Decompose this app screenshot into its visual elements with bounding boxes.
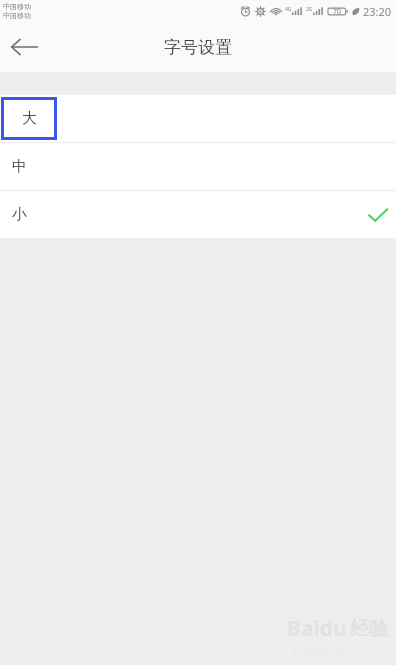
staticText: 小 <box>12 205 27 224</box>
staticText: 中国移动 <box>3 11 31 20</box>
staticText: 经验 <box>350 617 388 641</box>
button[interactable]: 大 <box>0 95 396 142</box>
staticText: 70 <box>333 7 342 17</box>
staticText: 2G <box>306 6 313 13</box>
staticText: 中国移动 <box>3 2 31 11</box>
button[interactable]: 中 <box>0 143 396 190</box>
staticText: 字号设置 <box>164 37 232 58</box>
button[interactable]: 小 <box>0 191 396 238</box>
staticText: 大 <box>22 109 37 128</box>
staticText: 4G <box>285 6 292 13</box>
staticText: Baidu <box>287 614 347 643</box>
staticText: 中 <box>12 157 27 176</box>
button[interactable]: Back <box>0 23 48 71</box>
staticText: 23:20 <box>363 4 392 19</box>
